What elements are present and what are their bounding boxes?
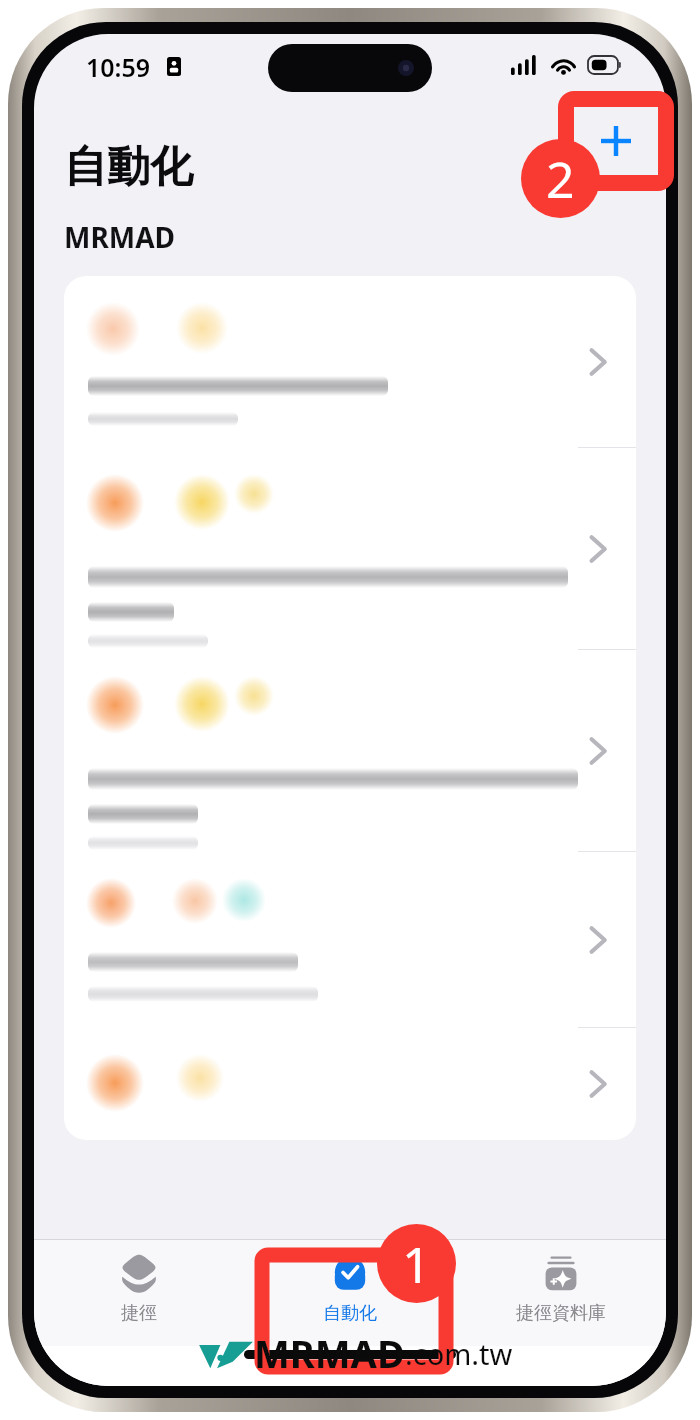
staticText: 10:59 — [86, 50, 151, 84]
button[interactable]: Add automation — [566, 99, 666, 183]
button[interactable] — [64, 1028, 636, 1140]
staticText: .com.tw — [405, 1334, 513, 1373]
staticText: 自動化 — [64, 140, 193, 194]
button[interactable] — [64, 448, 636, 650]
button[interactable] — [64, 276, 636, 448]
staticText: MRMAD — [254, 1327, 405, 1379]
staticText: 捷徑 — [121, 1302, 157, 1325]
staticText: MRMAD — [64, 218, 176, 256]
button[interactable]: 捷徑 — [34, 1240, 244, 1346]
button[interactable]: 捷徑資料庫 — [455, 1240, 666, 1346]
staticText: 1 — [402, 1230, 431, 1298]
button[interactable] — [64, 852, 636, 1028]
staticText: 2 — [546, 145, 575, 213]
staticText: 自動化 — [323, 1302, 377, 1325]
staticText: 捷徑資料庫 — [516, 1302, 606, 1325]
button[interactable] — [64, 650, 636, 852]
button[interactable]: 自動化 — [244, 1240, 455, 1346]
